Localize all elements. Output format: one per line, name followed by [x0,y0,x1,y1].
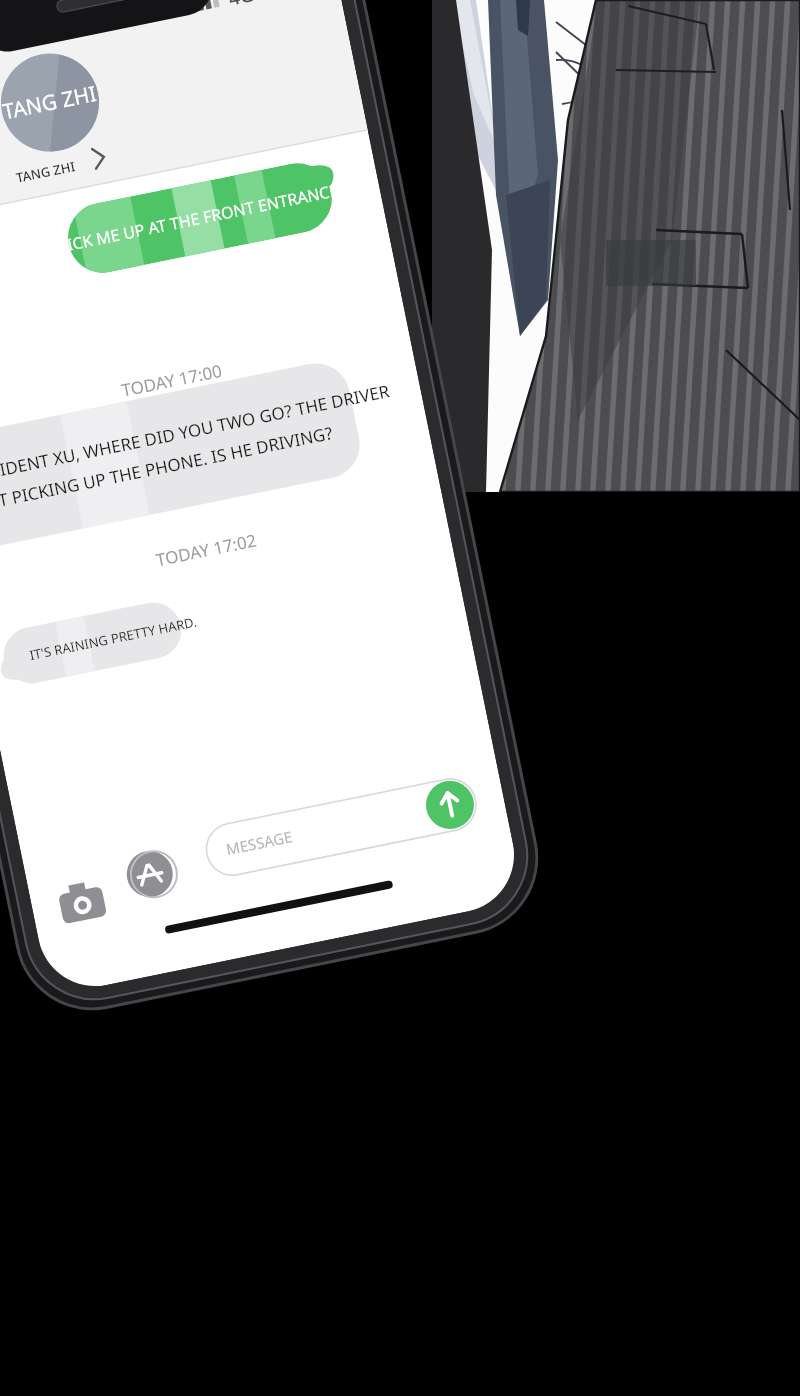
button[interactable]: Chat with Tang Zhi [0,0,800,1396]
